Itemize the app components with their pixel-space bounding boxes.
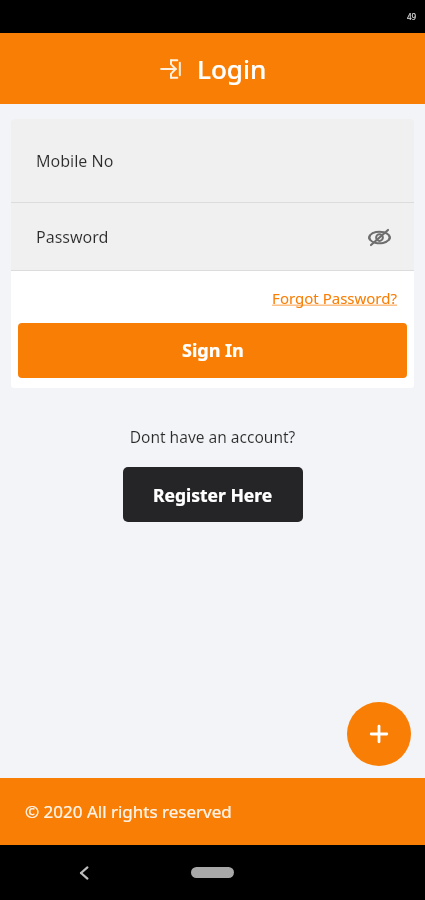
button[interactable]: Add	[347, 702, 411, 766]
staticText: Dont have an account?	[0, 426, 425, 447]
staticText: Register Here	[153, 483, 273, 507]
button[interactable]: Register Here	[123, 467, 303, 522]
staticText: Login	[197, 51, 267, 86]
staticText: Mobile No	[36, 150, 114, 172]
button[interactable]: Show password	[362, 220, 396, 254]
button[interactable]: Password	[11, 203, 414, 270]
staticText: Password	[36, 226, 109, 248]
button[interactable]: Mobile No	[11, 119, 414, 202]
other: Back	[75, 863, 95, 883]
staticText: 49	[407, 11, 417, 22]
staticText: © 2020 All rights reserved	[25, 800, 232, 823]
button[interactable]: Forgot Password?	[11, 288, 414, 308]
button[interactable]: Sign In	[18, 323, 407, 378]
staticText: Sign In	[182, 338, 244, 363]
other: Home	[191, 867, 234, 878]
